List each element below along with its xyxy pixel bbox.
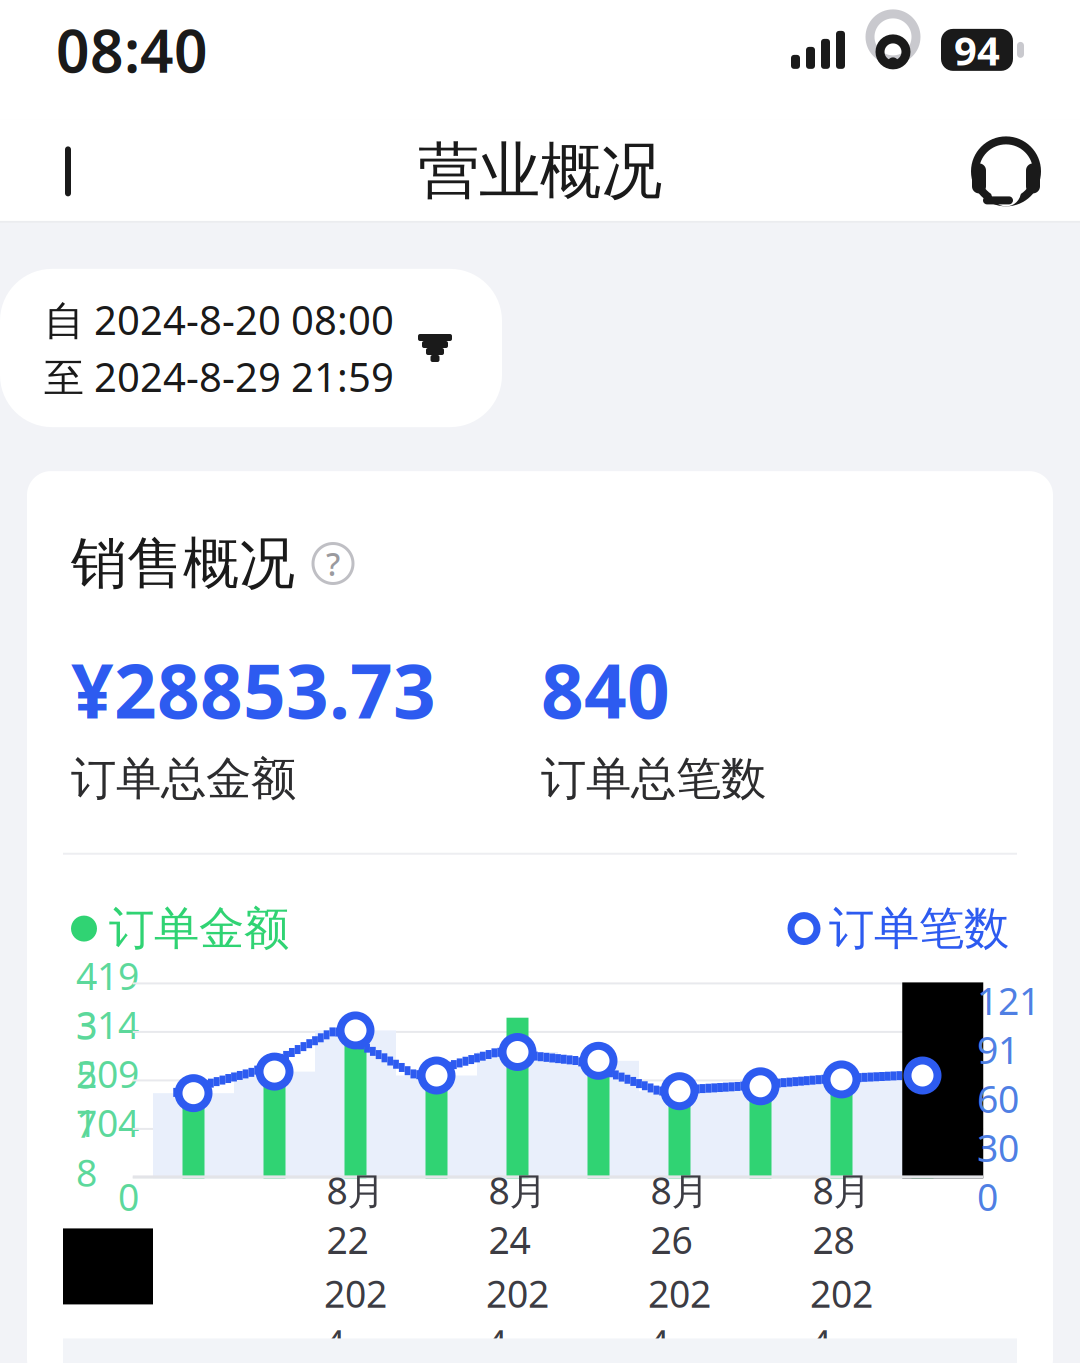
staticText: 至 2024-8-29 21:59: [44, 350, 394, 403]
staticText: 4193: [76, 951, 139, 1050]
staticText: 订单金额: [109, 901, 289, 956]
staticText: 840: [541, 640, 670, 739]
staticText: 8月24: [488, 1165, 546, 1264]
staticText: 2097: [76, 1049, 139, 1148]
staticText: 2024: [648, 1268, 711, 1363]
staticText: 订单笔数: [829, 901, 1009, 956]
staticText: 30: [977, 1123, 1019, 1172]
staticText: 自 2024-8-20 08:00: [44, 293, 394, 346]
staticText: 94: [954, 23, 1000, 76]
staticText: 销售概况: [71, 529, 295, 598]
staticText: 8月26: [650, 1165, 708, 1264]
staticText: 订单总笔数: [541, 751, 766, 807]
staticText: 08:40: [56, 11, 208, 89]
staticText: 0: [977, 1172, 998, 1221]
staticText: 1048: [76, 1098, 139, 1197]
staticText: 2024: [324, 1268, 387, 1363]
staticText: 2024: [810, 1268, 873, 1363]
staticText: 订单总金额: [71, 751, 296, 807]
staticText: ?: [326, 542, 340, 585]
staticText: 2024: [486, 1268, 549, 1363]
staticText: 营业概况: [418, 134, 662, 209]
staticText: 0: [118, 1172, 139, 1221]
staticText: 8月28: [812, 1165, 870, 1264]
staticText: 91: [977, 1025, 1019, 1074]
staticText: 8月22: [326, 1165, 384, 1264]
staticText: ¥28853.73: [71, 640, 436, 739]
staticText: 60: [977, 1074, 1019, 1123]
button[interactable]: 说明: [313, 543, 353, 583]
button[interactable]: 返回: [26, 123, 122, 219]
staticText: 3145: [76, 1000, 139, 1099]
button[interactable]: 客服: [958, 123, 1054, 219]
staticText: 121: [977, 976, 1040, 1025]
button[interactable]: 自 2024-8-20 08:00: [0, 269, 502, 427]
